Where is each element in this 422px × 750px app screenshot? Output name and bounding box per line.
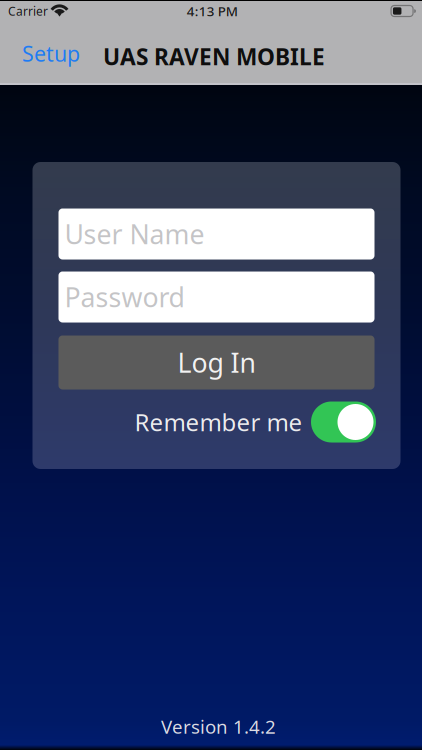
- staticText: Setup: [22, 39, 80, 68]
- staticText: Password: [64, 279, 184, 315]
- staticText: Version 1.4.2: [161, 714, 276, 739]
- button[interactable]: Log In: [58, 335, 374, 389]
- staticText: 4:13 PM: [187, 2, 238, 20]
- staticText: UAS RAVEN MOBILE: [103, 41, 325, 71]
- button[interactable]: Remember me: [58, 401, 374, 442]
- staticText: Remember me: [134, 406, 302, 438]
- staticText: Carrier: [8, 3, 48, 19]
- staticText: User Name: [64, 216, 204, 252]
- button[interactable]: Setup: [12, 27, 90, 79]
- staticText: Log In: [177, 345, 255, 380]
